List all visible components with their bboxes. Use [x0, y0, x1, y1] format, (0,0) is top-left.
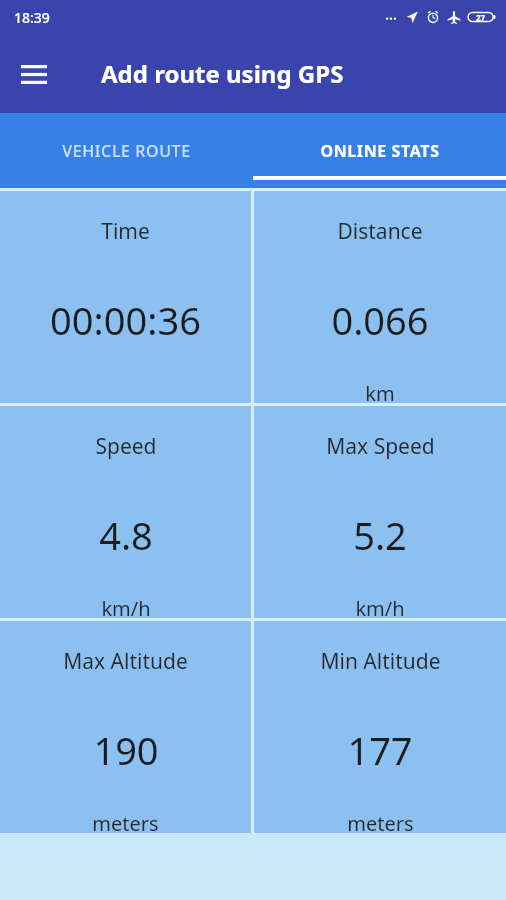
staticText: Distance: [337, 217, 423, 246]
staticText: meters: [347, 810, 414, 833]
staticText: Speed: [95, 432, 157, 461]
staticText: 190: [93, 724, 159, 776]
staticText: 00:00:36: [50, 294, 201, 346]
button[interactable]: Speed: [0, 406, 251, 618]
staticText: 177: [347, 724, 413, 776]
staticText: km/h: [101, 595, 151, 618]
button[interactable]: Max Speed: [254, 406, 506, 618]
staticText: 0.066: [331, 294, 429, 346]
staticText: Max Speed: [326, 432, 435, 461]
staticText: meters: [92, 810, 159, 833]
button[interactable]: Time: [0, 191, 251, 403]
button[interactable]: VEHICLE ROUTE: [0, 113, 253, 188]
staticText: ONLINE STATS: [320, 140, 440, 162]
staticText: Add route using GPS: [101, 57, 344, 90]
button[interactable]: Min Altitude: [254, 621, 506, 833]
staticText: km/h: [355, 595, 405, 618]
button[interactable]: Open navigation menu: [10, 50, 58, 98]
staticText: 4.8: [99, 509, 153, 561]
staticText: Max Altitude: [63, 647, 188, 676]
staticText: VEHICLE ROUTE: [62, 140, 191, 162]
button[interactable]: Max Altitude: [0, 621, 251, 833]
staticText: Time: [101, 217, 150, 246]
button[interactable]: ONLINE STATS: [253, 113, 506, 188]
button[interactable]: Distance: [254, 191, 506, 403]
staticText: 27: [476, 12, 486, 23]
staticText: Min Altitude: [320, 647, 441, 676]
staticText: 18:39: [14, 8, 50, 27]
staticText: km: [365, 380, 395, 403]
staticText: 5.2: [353, 509, 407, 561]
